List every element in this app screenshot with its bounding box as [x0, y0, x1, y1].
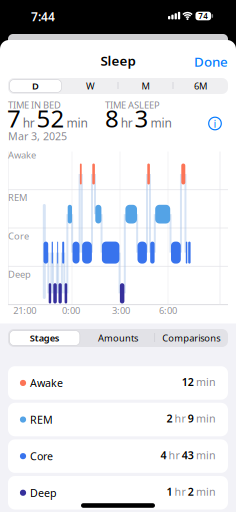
staticText: REM [8, 191, 27, 204]
staticText: Stages [30, 332, 60, 344]
button[interactable]: About Sleep [207, 116, 222, 131]
button[interactable]: 6M [173, 78, 228, 94]
button[interactable]: Done [0, 0, 40, 14]
staticText: Deep [30, 486, 57, 500]
staticText: 9 [188, 411, 194, 426]
staticText: Done [194, 53, 228, 70]
button[interactable]: Stages [8, 329, 81, 347]
staticText: TIME IN BED [8, 99, 61, 111]
staticText: min [196, 448, 216, 462]
staticText: Awake [8, 149, 36, 161]
staticText: 7 [7, 102, 21, 134]
staticText: 3 [135, 102, 149, 134]
staticText: hr [175, 485, 186, 499]
staticText: 52 [37, 102, 65, 134]
button[interactable]: M [118, 78, 173, 94]
staticText: min [196, 375, 216, 389]
staticText: i [213, 116, 216, 131]
staticText: 2 [166, 411, 172, 426]
staticText: 74 [198, 11, 208, 21]
staticText: hr [121, 115, 133, 131]
staticText: M [141, 80, 149, 92]
staticText: 7:44 [31, 8, 55, 24]
staticText: Core [30, 449, 53, 463]
staticText: min [66, 115, 87, 131]
staticText: Mar 3, 2025 [8, 129, 67, 143]
staticText: D [32, 80, 39, 92]
staticText: 6:00 [159, 304, 177, 317]
staticText: 6M [194, 80, 207, 92]
staticText: min [196, 411, 216, 426]
staticText: hr [169, 448, 180, 462]
staticText: 1 [166, 485, 172, 499]
staticText: Comparisons [162, 332, 220, 344]
button[interactable]: Comparisons [155, 329, 228, 347]
staticText: 3:00 [112, 304, 130, 317]
staticText: W [86, 80, 95, 92]
staticText: 21:00 [13, 304, 36, 317]
staticText: Amounts [98, 332, 138, 344]
button[interactable]: D [8, 78, 63, 94]
staticText: min [196, 485, 216, 499]
staticText: 0:00 [62, 304, 80, 317]
staticText: TIME ASLEEP [105, 99, 160, 111]
staticText: 12 [182, 375, 194, 389]
button[interactable]: W [63, 78, 118, 94]
staticText: Awake [30, 376, 63, 390]
staticText: Core [8, 230, 29, 242]
staticText: REM [30, 412, 53, 427]
staticText: 43 [182, 448, 194, 462]
staticText: 8 [105, 102, 119, 134]
staticText: hr [23, 115, 35, 131]
staticText: Sleep [100, 52, 135, 69]
staticText: min [150, 115, 171, 131]
button[interactable]: Amounts [81, 329, 155, 347]
staticText: 4 [160, 448, 166, 462]
staticText: 2 [188, 485, 194, 499]
staticText: hr [175, 411, 186, 426]
staticText: Deep [8, 268, 31, 280]
